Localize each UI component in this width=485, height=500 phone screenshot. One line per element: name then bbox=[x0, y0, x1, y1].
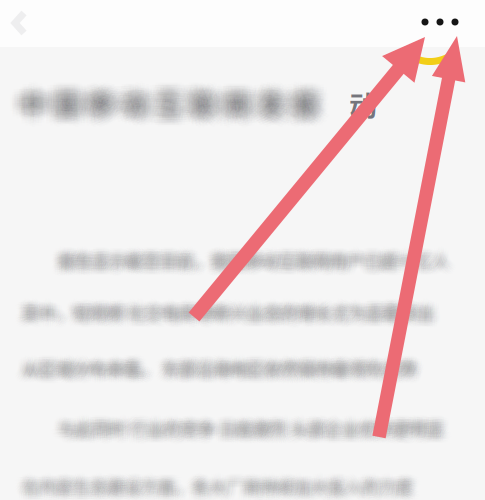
staticText: 在内容生态建设方面，各大厂商持续加大投入的力度 bbox=[16, 475, 407, 500]
staticText: 与此同时 行业的竞争 日趋激烈 头部企业优势更明显 bbox=[59, 409, 445, 434]
staticText: 报告显示截至目前，我国移动互联网用户已超十亿人 bbox=[59, 244, 450, 268]
staticText: 中国移动互联网发报 bbox=[28, 76, 326, 114]
staticText: 其中，短视频 社交电商等新兴业态的增长尤为显著突出 bbox=[26, 299, 438, 324]
staticText: 中国移动互联网发报 bbox=[24, 90, 322, 128]
staticText: 与此同时 行业的竞争 日趋激烈 头部企业优势更明显 bbox=[57, 418, 443, 443]
staticText: 在内容生态建设方面，各大厂商持续加大投入的力度 bbox=[25, 471, 416, 496]
staticText: 与此同时 行业的竞争 日趋激烈 头部企业优势更明显 bbox=[59, 412, 445, 436]
staticText: 从区域分布来看。 东部沿海地区依然保持着领先优势 bbox=[29, 354, 424, 379]
button[interactable]: Back bbox=[0, 1, 46, 45]
staticText: 在内容生态建设方面，各大厂商持续加大投入的力度 bbox=[18, 476, 409, 500]
staticText: 与此同时 行业的竞争 日趋激烈 头部企业优势更明显 bbox=[58, 410, 444, 435]
staticText: 从区域分布来看。 东部沿海地区依然保持着领先优势 bbox=[16, 360, 411, 385]
staticText: 与此同时 行业的竞争 日趋激烈 头部企业优势更明显 bbox=[58, 423, 444, 447]
staticText: 其中，短视频 社交电商等新兴业态的增长尤为显著突出 bbox=[23, 296, 435, 320]
staticText: 报告显示截至目前，我国移动互联网用户已超十亿人 bbox=[57, 249, 448, 273]
staticText: 报告显示截至目前，我国移动互联网用户已超十亿人 bbox=[61, 254, 452, 278]
staticText: 在内容生态建设方面，各大厂商持续加大投入的力度 bbox=[23, 470, 414, 494]
staticText: 中国移动互联网发报 bbox=[30, 86, 328, 124]
staticText: 中国移动互联网发报 bbox=[24, 75, 322, 113]
staticText: 从区域分布来看。 东部沿海地区依然保持着领先优势 bbox=[22, 356, 417, 381]
staticText: 中国移动互联网发报 bbox=[10, 91, 308, 128]
staticText: 与此同时 行业的竞争 日趋激烈 头部企业优势更明显 bbox=[61, 412, 447, 436]
staticText: 从区域分布来看。 东部沿海地区依然保持着领先优势 bbox=[17, 356, 412, 381]
staticText: 在内容生态建设方面，各大厂商持续加大投入的力度 bbox=[23, 479, 414, 500]
staticText: 其中，短视频 社交电商等新兴业态的增长尤为显著突出 bbox=[23, 301, 435, 326]
staticText: 中国移动互联网发报 bbox=[23, 82, 321, 120]
staticText: 中国移动互联网发报 bbox=[17, 77, 315, 114]
staticText: 从区域分布来看。 东部沿海地区依然保持着领先优势 bbox=[17, 355, 412, 379]
staticText: 其中，短视频 社交电商等新兴业态的增长尤为显著突出 bbox=[22, 294, 434, 319]
staticText: 与此同时 行业的竞争 日趋激烈 头部企业优势更明显 bbox=[65, 418, 451, 442]
staticText: 在内容生态建设方面，各大厂商持续加大投入的力度 bbox=[21, 480, 412, 500]
staticText: 与此同时 行业的竞争 日趋激烈 头部企业优势更明显 bbox=[54, 411, 440, 435]
staticText: 中国移动互联网发报 bbox=[24, 85, 322, 123]
staticText: 中国移动互联网发报 bbox=[16, 88, 314, 126]
staticText: 从区域分布来看。 东部沿海地区依然保持着领先优势 bbox=[20, 351, 415, 376]
staticText: 从区域分布来看。 东部沿海地区依然保持着领先优势 bbox=[24, 355, 419, 379]
staticText: 其中，短视频 社交电商等新兴业态的增长尤为显著突出 bbox=[14, 298, 426, 323]
staticText: 报告显示截至目前，我国移动互联网用户已超十亿人 bbox=[59, 253, 450, 278]
staticText: 在内容生态建设方面，各大厂商持续加大投入的力度 bbox=[22, 478, 413, 500]
staticText: 中国移动互联网发报 bbox=[22, 77, 320, 115]
staticText: 从区域分布来看。 东部沿海地区依然保持着领先优势 bbox=[23, 349, 418, 374]
staticText: 中国移动互联网发报 bbox=[19, 87, 317, 125]
staticText: 在内容生态建设方面，各大厂商持续加大投入的力度 bbox=[20, 469, 411, 494]
staticText: 与此同时 行业的竞争 日趋激烈 头部企业优势更明显 bbox=[61, 417, 447, 441]
staticText: 从区域分布来看。 东部沿海地区依然保持着领先优势 bbox=[25, 352, 420, 376]
staticText: 中国移动互联网发报 bbox=[20, 84, 318, 122]
staticText: 在内容生态建设方面，各大厂商持续加大投入的力度 bbox=[14, 475, 405, 499]
staticText: 中国移动互联网发报 bbox=[25, 77, 323, 115]
staticText: 与此同时 行业的竞争 日趋激烈 头部企业优势更明显 bbox=[65, 414, 451, 439]
staticText: 其中，短视频 社交电商等新兴业态的增长尤为显著突出 bbox=[18, 302, 430, 327]
staticText: 中国移动互联网发报 bbox=[32, 84, 330, 122]
staticText: 其中，短视频 社交电商等新兴业态的增长尤为显著突出 bbox=[19, 301, 431, 326]
staticText: 报告显示截至目前，我国移动互联网用户已超十亿人 bbox=[58, 252, 449, 277]
staticText: 从区域分布来看。 东部沿海地区依然保持着领先优势 bbox=[25, 357, 420, 381]
staticText: 从区域分布来看。 东部沿海地区依然保持着领先优势 bbox=[20, 356, 415, 380]
staticText: 在内容生态建设方面，各大厂商持续加大投入的力度 bbox=[22, 468, 413, 493]
staticText: 在内容生态建设方面，各大厂商持续加大投入的力度 bbox=[25, 478, 416, 500]
staticText: 中国移动互联网发报 bbox=[10, 80, 308, 117]
staticText: 报告显示截至目前，我国移动互联网用户已超十亿人 bbox=[62, 247, 453, 272]
staticText: 在内容生态建设方面，各大厂商持续加大投入的力度 bbox=[27, 475, 418, 499]
staticText: 从区域分布来看。 东部沿海地区依然保持着领先优势 bbox=[22, 350, 417, 375]
staticText: 报告显示截至目前，我国移动互联网用户已超十亿人 bbox=[54, 254, 445, 278]
staticText: 中国移动互联网发报 bbox=[15, 79, 313, 117]
staticText: 在内容生态建设方面，各大厂商持续加大投入的力度 bbox=[28, 478, 419, 500]
staticText: 在内容生态建设方面，各大厂商持续加大投入的力度 bbox=[16, 478, 407, 500]
staticText: 与此同时 行业的竞争 日趋激烈 头部企业优势更明显 bbox=[56, 419, 442, 443]
staticText: 中国移动互联网发报 bbox=[13, 88, 311, 125]
staticText: 其中，短视频 社交电商等新兴业态的增长尤为显著突出 bbox=[23, 293, 435, 318]
staticText: 从区域分布来看。 东部沿海地区依然保持着领先优势 bbox=[27, 351, 422, 375]
staticText: 从区域分布来看。 东部沿海地区依然保持着领先优势 bbox=[23, 353, 418, 378]
staticText: 中国移动互联网发报 bbox=[19, 78, 317, 116]
staticText: 报告显示截至目前，我国移动互联网用户已超十亿人 bbox=[53, 247, 444, 271]
staticText: 从区域分布来看。 东部沿海地区依然保持着领先优势 bbox=[19, 357, 414, 382]
staticText: 中国移动互联网发报 bbox=[20, 90, 318, 128]
staticText: 从区域分布来看。 东部沿海地区依然保持着领先优势 bbox=[21, 358, 416, 383]
staticText: 其中，短视频 社交电商等新兴业态的增长尤为显著突出 bbox=[29, 302, 441, 326]
staticText: 中国移动互联网发报 bbox=[27, 93, 325, 130]
staticText: 其中，短视频 社交电商等新兴业态的增长尤为显著突出 bbox=[19, 298, 431, 323]
staticText: 在内容生态建设方面，各大厂商持续加大投入的力度 bbox=[27, 480, 418, 500]
staticText: 与此同时 行业的竞争 日趋激烈 头部企业优势更明显 bbox=[54, 418, 440, 443]
staticText: 从区域分布来看。 东部沿海地区依然保持着领先优势 bbox=[27, 354, 422, 379]
staticText: 其中，短视频 社交电商等新兴业态的增长尤为显著突出 bbox=[23, 297, 435, 322]
staticText: 报告显示截至目前，我国移动互联网用户已超十亿人 bbox=[54, 250, 445, 275]
staticText: 报告显示截至目前，我国移动互联网用户已超十亿人 bbox=[61, 250, 452, 275]
staticText: 中国移动互联网发报 bbox=[24, 93, 322, 130]
staticText: 报告显示截至目前，我国移动互联网用户已超十亿人 bbox=[60, 242, 451, 267]
staticText: 其中，短视频 社交电商等新兴业态的增长尤为显著突出 bbox=[20, 300, 432, 324]
staticText: 在内容生态建设方面，各大厂商持续加大投入的力度 bbox=[15, 473, 406, 498]
staticText: 与此同时 行业的竞争 日趋激烈 头部企业优势更明显 bbox=[50, 417, 436, 441]
staticText: 其中，短视频 社交电商等新兴业态的增长尤为显著突出 bbox=[27, 295, 439, 319]
staticText: 中国移动互联网发报 bbox=[20, 94, 318, 132]
staticText: 从区域分布来看。 东部沿海地区依然保持着领先优势 bbox=[15, 355, 410, 380]
staticText: 其中，短视频 社交电商等新兴业态的增长尤为显著突出 bbox=[15, 299, 427, 324]
staticText: 报告显示截至目前，我国移动互联网用户已超十亿人 bbox=[55, 249, 446, 274]
staticText: 报告显示截至目前，我国移动互联网用户已超十亿人 bbox=[57, 246, 448, 270]
staticText: 从区域分布来看。 东部沿海地区依然保持着领先优势 bbox=[21, 362, 416, 386]
button[interactable]: More bbox=[409, 0, 471, 44]
staticText: 从区域分布来看。 东部沿海地区依然保持着领先优势 bbox=[14, 357, 409, 381]
